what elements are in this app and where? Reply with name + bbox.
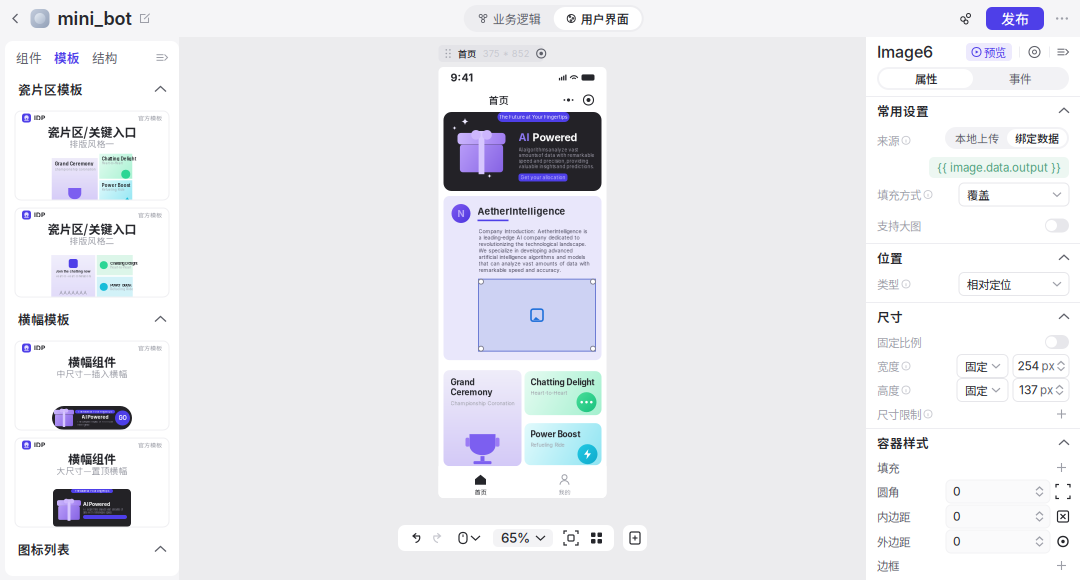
button[interactable]: 事件 bbox=[973, 69, 1067, 88]
button[interactable]: 本地上传 bbox=[947, 129, 1007, 147]
staticText: AI Powered bbox=[83, 501, 110, 507]
button[interactable]: IDP bbox=[15, 111, 169, 200]
staticText: 外边距 bbox=[877, 533, 910, 550]
staticText: Chatting Delight bbox=[110, 261, 137, 266]
button[interactable]: Edit 内边距 bbox=[1057, 510, 1069, 522]
staticText: IDP bbox=[34, 211, 45, 219]
button[interactable]: 常用设置 bbox=[866, 97, 1080, 124]
button[interactable]: Rename bbox=[131, 0, 158, 37]
button[interactable]: Close bbox=[578, 91, 598, 109]
button[interactable]: 绑定数据 bbox=[1007, 129, 1067, 147]
button[interactable]: 结构 bbox=[92, 41, 118, 74]
button[interactable]: 固定 bbox=[957, 378, 1008, 401]
button[interactable]: 我的 bbox=[522, 475, 606, 497]
staticText: px bbox=[1040, 383, 1053, 397]
button[interactable]: 容器样式 bbox=[866, 429, 1080, 456]
staticText: 本地上传 bbox=[955, 130, 999, 146]
staticText: 固定 bbox=[965, 358, 987, 374]
staticText: 事件 bbox=[1009, 70, 1031, 87]
button[interactable]: Edit 外边距 bbox=[1057, 535, 1069, 547]
staticText: AI Powered bbox=[81, 414, 108, 420]
staticText: IDP bbox=[34, 344, 45, 352]
staticText: AI bbox=[518, 131, 529, 144]
button[interactable]: 发布 bbox=[986, 7, 1044, 30]
button[interactable]: 业务逻辑 bbox=[466, 7, 554, 30]
button[interactable]: Settings bbox=[1027, 46, 1042, 57]
staticText: 9:41 bbox=[450, 71, 473, 84]
button[interactable]: 图标列表 bbox=[15, 535, 169, 563]
staticText: 官方模板 bbox=[138, 344, 162, 352]
button[interactable]: 用户界面 bbox=[554, 7, 642, 30]
staticText: 属性 bbox=[915, 70, 937, 87]
staticText: Championship Coronation bbox=[55, 167, 96, 171]
button[interactable]: 尺寸 bbox=[866, 303, 1080, 330]
button[interactable]: Redo bbox=[427, 533, 451, 543]
staticText: Heart-to-Heart bbox=[110, 266, 131, 269]
staticText: 预览 bbox=[984, 44, 1006, 60]
staticText: 组件 bbox=[16, 48, 42, 66]
button[interactable]: Toggle bbox=[1045, 218, 1069, 232]
button[interactable]: Collaborate bbox=[949, 0, 982, 37]
button[interactable]: 瓷片区模板 bbox=[15, 75, 169, 103]
button[interactable]: 属性 bbox=[879, 69, 973, 88]
staticText: Grand Ceremony bbox=[55, 161, 94, 166]
staticText: IDP bbox=[34, 114, 45, 122]
staticText: Refueling Ride bbox=[102, 188, 125, 191]
staticText: 固定 bbox=[965, 382, 987, 398]
staticText: 用户界面 bbox=[581, 10, 629, 27]
staticText: 横幅组件 bbox=[68, 450, 116, 467]
button[interactable]: 预览 bbox=[966, 43, 1012, 61]
button[interactable]: IDP bbox=[15, 208, 169, 297]
staticText: Refueling Ride bbox=[530, 442, 564, 448]
button[interactable]: 固定 bbox=[957, 354, 1008, 377]
button[interactable]: Edit 圆角 bbox=[1057, 485, 1069, 497]
button[interactable]: Add fill bbox=[1054, 460, 1069, 475]
staticText: 填充 bbox=[877, 459, 899, 476]
staticText: mini_bot bbox=[57, 8, 131, 29]
button[interactable]: Back bbox=[0, 0, 30, 37]
button[interactable]: Tool bbox=[451, 532, 488, 543]
button[interactable]: Undo bbox=[403, 533, 427, 543]
button[interactable]: New page bbox=[623, 525, 647, 551]
staticText: Heart-to-Heart bbox=[102, 161, 123, 165]
button[interactable]: Add size constraint bbox=[1054, 406, 1069, 421]
staticText: 类型 bbox=[877, 276, 899, 292]
button[interactable]: Toggle bbox=[1045, 335, 1069, 349]
button[interactable]: Collapse panel bbox=[156, 53, 168, 61]
button[interactable]: Menu bbox=[558, 91, 578, 109]
button[interactable]: 65% bbox=[493, 529, 553, 547]
button[interactable]: IDP bbox=[15, 438, 169, 527]
button[interactable]: Add border bbox=[1054, 558, 1069, 573]
staticText: 相对定位 bbox=[967, 276, 1011, 292]
staticText: 内边距 bbox=[877, 508, 910, 525]
staticText: 瓷片区模板 bbox=[18, 80, 83, 98]
button[interactable]: 位置 bbox=[866, 244, 1080, 271]
staticText: Chatting Delight bbox=[102, 156, 137, 161]
button[interactable]: 模板 bbox=[54, 41, 80, 74]
staticText: Heart-to-Heart conversations bbox=[56, 275, 91, 278]
staticText: 65% bbox=[501, 530, 530, 546]
staticText: 官方模板 bbox=[138, 441, 162, 449]
button[interactable]: Collapse inspector bbox=[1057, 48, 1069, 56]
staticText: AetherIntelligence bbox=[477, 206, 565, 217]
staticText: Get your allocation bbox=[520, 175, 565, 180]
button[interactable]: 组件 bbox=[16, 41, 42, 74]
button[interactable]: 首页 bbox=[438, 45, 543, 62]
button[interactable]: More options bbox=[1044, 0, 1080, 37]
staticText: 尺寸限制 bbox=[877, 406, 921, 422]
button[interactable]: 覆盖 bbox=[959, 183, 1069, 206]
button[interactable]: Components bbox=[584, 532, 609, 543]
staticText: 发布 bbox=[1001, 8, 1029, 29]
button[interactable]: 相对定位 bbox=[959, 272, 1069, 295]
staticText: Power Boost bbox=[102, 183, 131, 188]
staticText: 首页 bbox=[488, 93, 508, 107]
button[interactable]: Fit to screen bbox=[558, 532, 584, 544]
button[interactable]: 首页 bbox=[438, 475, 522, 497]
button[interactable]: IDP bbox=[15, 341, 169, 430]
staticText: 中尺寸—插入横幅 bbox=[56, 367, 127, 380]
staticText: 0 bbox=[953, 509, 961, 524]
button[interactable]: 横幅模板 bbox=[15, 305, 169, 333]
staticText: The Future at Your Fingertips bbox=[78, 410, 112, 413]
staticText: 瓷片区/关键入口 bbox=[47, 123, 136, 140]
staticText: 模板 bbox=[54, 48, 80, 66]
